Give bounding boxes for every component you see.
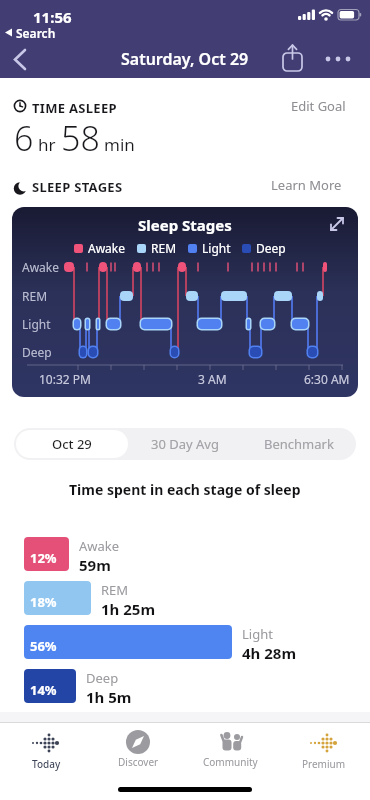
staticText: Light: [22, 316, 51, 332]
staticText: Saturday, Oct 29: [121, 48, 249, 70]
staticText: Search: [16, 25, 56, 41]
staticText: Benchmark: [264, 435, 334, 453]
button[interactable]: Edit Goal: [290, 95, 360, 117]
button[interactable]: Oct 29: [16, 430, 128, 458]
button[interactable]: Benchmark: [242, 428, 356, 460]
staticText: min: [104, 133, 135, 156]
staticText: Awake: [22, 259, 60, 275]
staticText: Edit Goal: [291, 97, 346, 115]
button[interactable]: Today: [0, 723, 92, 800]
staticText: REM: [22, 288, 48, 304]
button[interactable]: 56%: [24, 625, 232, 659]
staticText: Awake: [88, 240, 126, 256]
staticText: 14%: [30, 681, 57, 699]
staticText: SLEEP STAGES: [32, 178, 123, 196]
staticText: Discover: [118, 755, 159, 769]
staticText: 6: [14, 115, 34, 161]
staticText: TIME ASLEEP: [32, 99, 117, 117]
staticText: 18%: [30, 593, 57, 611]
button[interactable]: Sleep Stages: [12, 207, 358, 397]
staticText: 4h 28m: [242, 643, 297, 663]
button[interactable]: [320, 44, 360, 74]
staticText: 10:32 PM: [39, 371, 91, 387]
button[interactable]: 14%: [24, 669, 76, 703]
staticText: Community: [203, 755, 258, 769]
button[interactable]: 18%: [24, 581, 91, 615]
staticText: 12%: [30, 549, 57, 567]
staticText: Today: [32, 757, 61, 771]
staticText: 30 Day Avg: [151, 435, 219, 453]
staticText: Premium: [302, 757, 346, 771]
button[interactable]: Premium: [277, 723, 370, 800]
staticText: Deep: [22, 344, 52, 360]
staticText: 1h 5m: [86, 687, 132, 707]
staticText: REM: [151, 240, 177, 256]
staticText: Deep: [86, 669, 119, 687]
staticText: 3 AM: [198, 371, 227, 387]
staticText: 11:56: [33, 7, 72, 27]
button[interactable]: Community: [184, 723, 277, 800]
staticText: hr: [38, 133, 56, 156]
staticText: Light: [242, 625, 273, 643]
staticText: 6:30 AM: [304, 371, 350, 387]
staticText: 58: [61, 115, 100, 161]
button[interactable]: Learn More: [252, 174, 356, 196]
button[interactable]: Discover: [92, 723, 184, 800]
button[interactable]: 30 Day Avg: [128, 428, 242, 460]
staticText: Deep: [256, 240, 286, 256]
staticText: Oct 29: [52, 435, 92, 453]
button[interactable]: [4, 42, 40, 76]
staticText: Awake: [79, 537, 120, 555]
staticText: 56%: [30, 637, 57, 655]
staticText: Time spent in each stage of sleep: [69, 480, 301, 499]
staticText: Sleep Stages: [138, 215, 232, 235]
staticText: Learn More: [271, 176, 342, 194]
staticText: REM: [101, 581, 129, 599]
button[interactable]: [277, 42, 309, 76]
staticText: 59m: [79, 555, 111, 575]
staticText: Light: [202, 240, 231, 256]
staticText: 1h 25m: [101, 599, 156, 619]
button[interactable]: 12%: [24, 537, 69, 571]
